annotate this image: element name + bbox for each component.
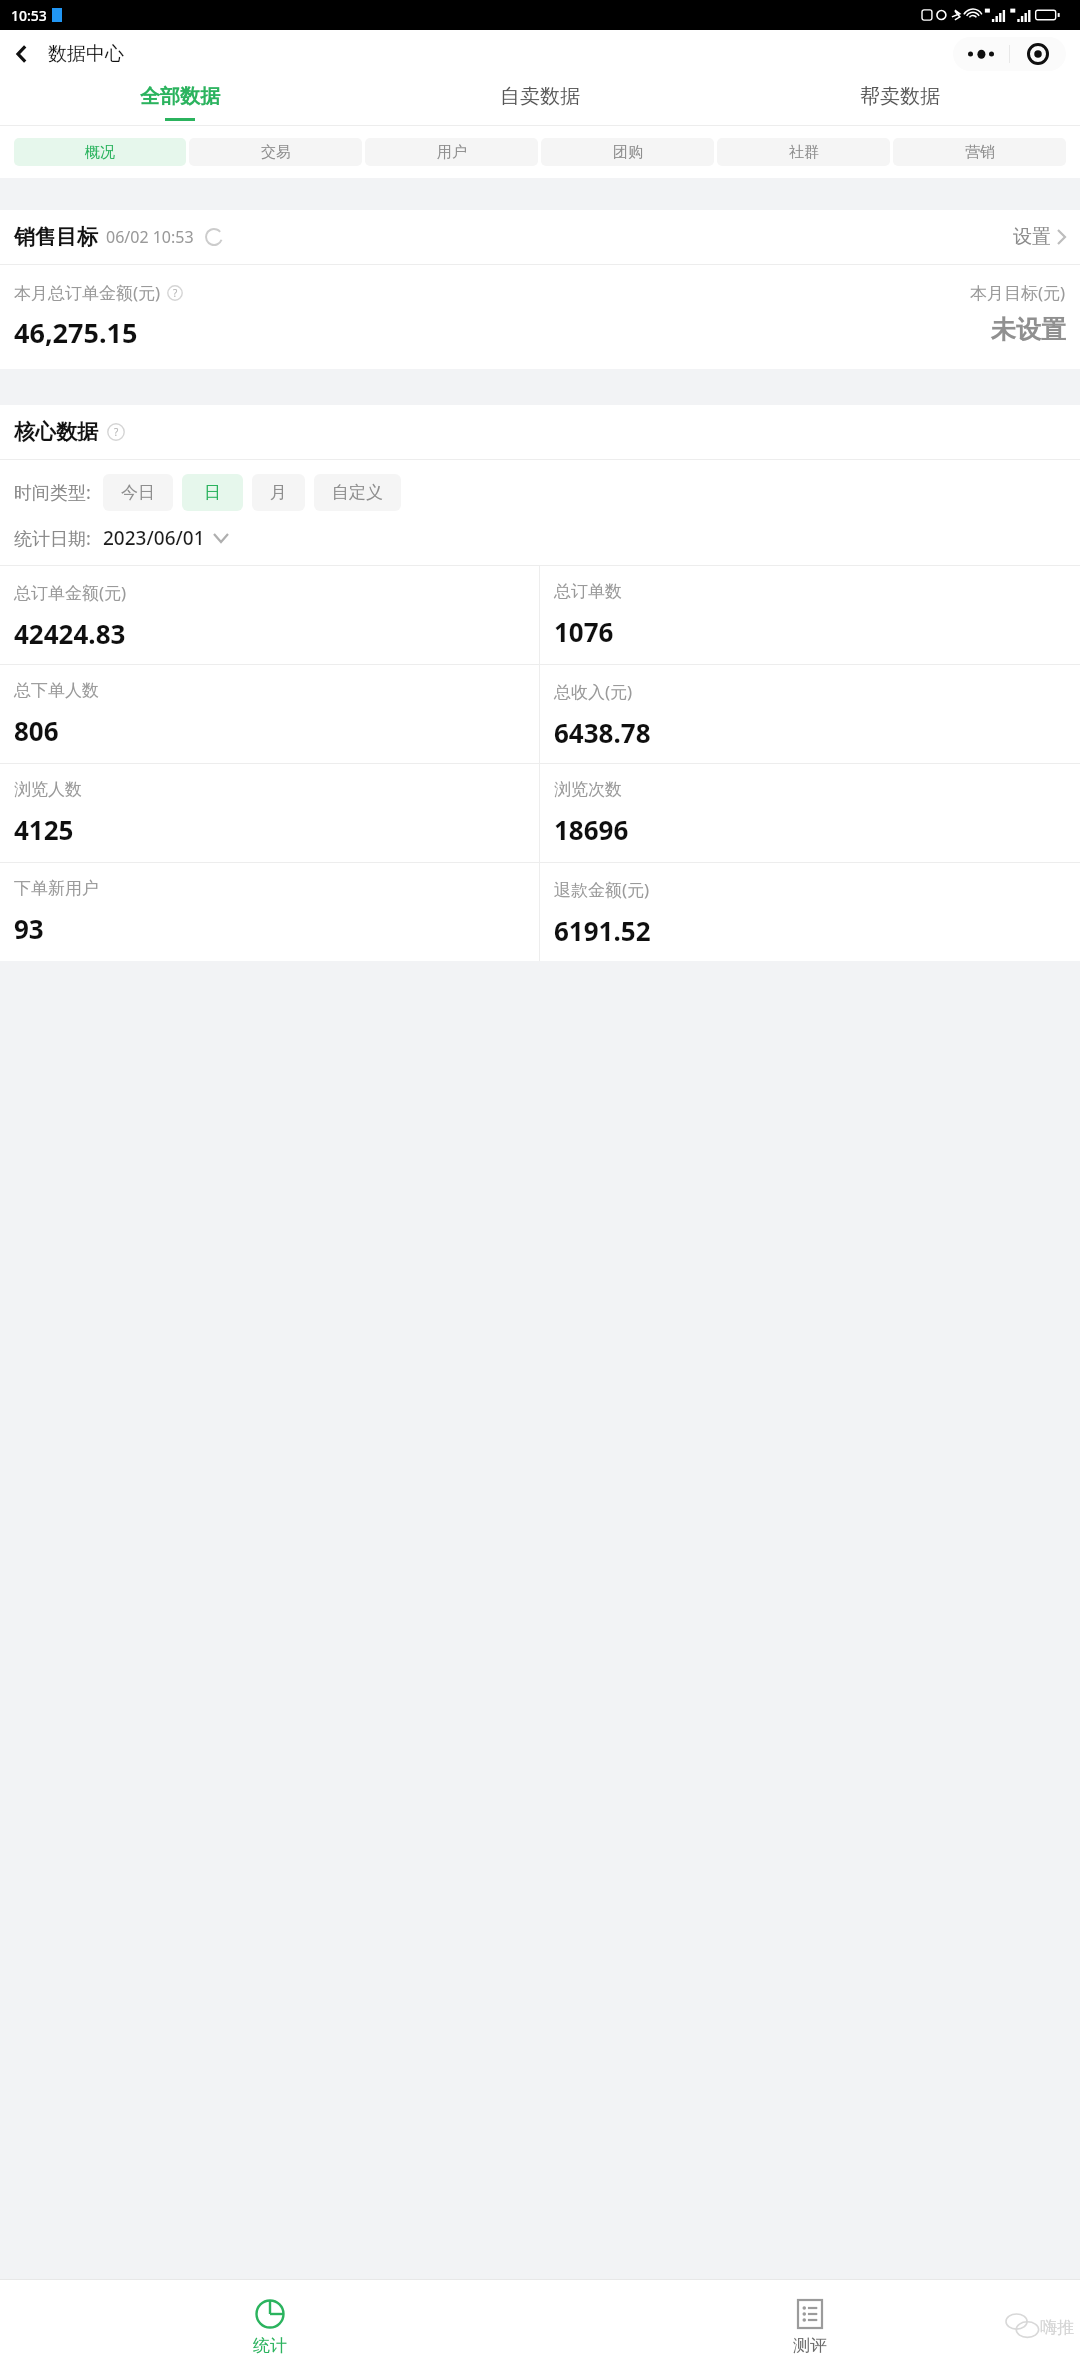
button[interactable]: 统计 xyxy=(0,2279,540,2375)
staticText: 月 xyxy=(270,482,287,503)
staticText: 2023/06/01 xyxy=(103,525,205,551)
staticText: 团购 xyxy=(613,143,643,162)
button[interactable]: Back xyxy=(0,32,44,76)
staticText: 总订单金额(元) xyxy=(14,581,127,604)
button[interactable]: 自卖数据 xyxy=(360,78,720,126)
staticText: 用户 xyxy=(437,143,467,162)
staticText: 6438.78 xyxy=(554,715,651,750)
staticText: 93 xyxy=(14,911,44,946)
button[interactable]: 社群 xyxy=(717,138,890,166)
staticText: 核心数据 xyxy=(14,419,98,445)
staticText: ? xyxy=(173,286,178,300)
staticText: 退款金额(元) xyxy=(554,878,650,901)
staticText: 自定义 xyxy=(332,482,383,503)
staticText: 46,275.15 xyxy=(14,314,138,351)
staticText: 总收入(元) xyxy=(554,680,633,703)
staticText: 总订单数 xyxy=(554,581,622,602)
staticText: 42424.83 xyxy=(14,616,126,651)
staticText: 统计日期: xyxy=(14,526,91,551)
button[interactable]: 退款金额(元) xyxy=(540,863,1080,961)
staticText: 概况 xyxy=(85,143,115,162)
staticText: 18696 xyxy=(554,812,629,847)
button[interactable]: 用户 xyxy=(365,138,538,166)
staticText: 未设置 xyxy=(991,314,1066,345)
staticText: 测评 xyxy=(793,2335,827,2356)
staticText: 交易 xyxy=(261,143,291,162)
button[interactable]: 日 xyxy=(182,474,243,511)
staticText: 自卖数据 xyxy=(500,84,580,109)
staticText: ? xyxy=(114,425,119,439)
staticText: 营销 xyxy=(965,143,995,162)
button[interactable]: Target xyxy=(1010,37,1066,71)
staticText: 总下单人数 xyxy=(14,680,99,701)
staticText: 数据中心 xyxy=(48,42,124,66)
button[interactable]: 概况 xyxy=(14,138,186,166)
staticText: 4125 xyxy=(14,812,74,847)
staticText: 06/02 10:53 xyxy=(106,226,194,248)
button[interactable]: 总订单金额(元) xyxy=(0,566,539,664)
staticText: 日 xyxy=(204,482,221,503)
staticText: 1076 xyxy=(554,614,614,649)
staticText: 嗨推 xyxy=(1040,2317,1074,2338)
button[interactable]: 团购 xyxy=(541,138,714,166)
staticText: 本月总订单金额(元) xyxy=(14,281,161,304)
button[interactable]: 总收入(元) xyxy=(540,665,1080,763)
button[interactable]: 交易 xyxy=(189,138,362,166)
staticText: 设置 xyxy=(1013,225,1051,249)
button[interactable]: 自定义 xyxy=(314,474,401,511)
staticText: 时间类型: xyxy=(14,480,91,505)
button[interactable]: Refresh xyxy=(204,227,224,247)
button[interactable]: More xyxy=(953,37,1009,71)
staticText: 10:53 xyxy=(11,6,47,25)
button[interactable]: 测评 xyxy=(540,2279,1080,2375)
button[interactable]: 浏览人数 xyxy=(0,764,539,862)
staticText: 浏览次数 xyxy=(554,779,622,800)
staticText: 6191.52 xyxy=(554,913,651,948)
button[interactable]: 设置 xyxy=(1013,225,1066,249)
button[interactable]: 帮卖数据 xyxy=(720,78,1080,126)
button[interactable]: 总订单数 xyxy=(540,566,1080,664)
staticText: 销售目标 xyxy=(14,224,98,250)
button[interactable]: 总下单人数 xyxy=(0,665,539,763)
button[interactable]: 统计日期: xyxy=(14,525,1080,551)
staticText: 社群 xyxy=(789,143,819,162)
staticText: 下单新用户 xyxy=(14,878,99,899)
button[interactable]: 下单新用户 xyxy=(0,863,539,961)
staticText: 浏览人数 xyxy=(14,779,82,800)
button[interactable]: 营销 xyxy=(893,138,1066,166)
staticText: 本月目标(元) xyxy=(970,281,1066,304)
staticText: 今日 xyxy=(121,482,155,503)
staticText: 统计 xyxy=(253,2335,287,2356)
button[interactable]: 浏览次数 xyxy=(540,764,1080,862)
staticText: 806 xyxy=(14,713,59,748)
button[interactable]: 月 xyxy=(252,474,305,511)
staticText: 帮卖数据 xyxy=(860,84,940,109)
button[interactable]: 今日 xyxy=(103,474,173,511)
button[interactable]: 全部数据 xyxy=(0,78,360,126)
staticText: 全部数据 xyxy=(140,84,220,109)
